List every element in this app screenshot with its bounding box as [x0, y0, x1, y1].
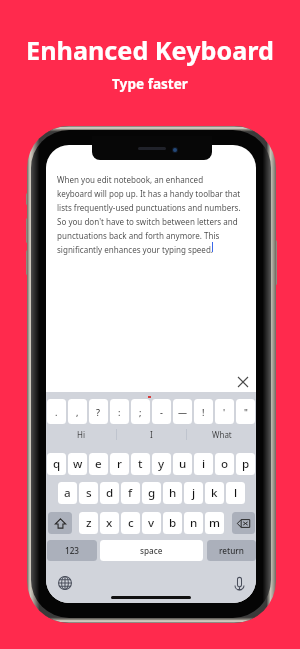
staticText: h — [169, 485, 177, 501]
staticText: ! — [202, 406, 205, 418]
staticText: e — [95, 456, 102, 472]
staticText: . — [55, 406, 58, 418]
staticText: Enhanced Keyboard — [26, 33, 274, 67]
button[interactable]: f — [121, 482, 140, 504]
staticText: q — [53, 456, 61, 472]
staticText: b — [169, 515, 177, 531]
staticText: ; — [139, 406, 142, 418]
button[interactable]: r — [110, 453, 129, 475]
staticText: " — [244, 406, 248, 418]
button[interactable]: Shift — [48, 512, 72, 534]
button[interactable]: space — [100, 540, 203, 561]
button[interactable]: d — [100, 482, 119, 504]
button[interactable]: b — [163, 512, 182, 534]
button[interactable]: o — [215, 453, 234, 475]
staticText: d — [106, 485, 114, 501]
button[interactable]: j — [184, 482, 203, 504]
staticText: l — [234, 485, 238, 501]
staticText: ? — [96, 406, 101, 418]
staticText: v — [148, 515, 155, 531]
button[interactable]: I — [117, 424, 186, 444]
button[interactable]: Change keyboard language — [55, 573, 75, 593]
button[interactable]: What — [187, 424, 256, 444]
staticText: w — [73, 456, 83, 472]
staticText: r — [117, 456, 122, 472]
staticText: k — [211, 485, 218, 501]
staticText: — — [178, 406, 188, 418]
staticText: y — [158, 456, 165, 472]
button[interactable]: ; — [131, 399, 150, 424]
button[interactable]: , — [68, 399, 87, 424]
button[interactable]: ? — [89, 399, 108, 424]
staticText: a — [64, 485, 71, 501]
button[interactable]: t — [131, 453, 150, 475]
button[interactable]: v — [142, 512, 161, 534]
staticText: - — [160, 406, 163, 418]
button[interactable]: return — [207, 540, 256, 561]
button[interactable]: g — [142, 482, 161, 504]
staticText: z — [86, 515, 92, 531]
button[interactable]: h — [163, 482, 182, 504]
staticText: m — [209, 515, 220, 531]
button[interactable]: e — [89, 453, 108, 475]
staticText: t — [138, 456, 143, 472]
button[interactable]: Backspace — [232, 512, 255, 534]
button[interactable]: z — [79, 512, 98, 534]
button[interactable]: n — [184, 512, 203, 534]
staticText: Type faster — [112, 74, 188, 93]
button[interactable]: w — [68, 453, 87, 475]
staticText: 123 — [65, 545, 80, 556]
staticText: x — [106, 515, 113, 531]
button[interactable]: y — [152, 453, 171, 475]
staticText: p — [242, 456, 250, 472]
staticText: Hi — [77, 429, 85, 440]
staticText: When you edit notebook, an enhanced keyb… — [57, 174, 252, 255]
button[interactable]: c — [121, 512, 140, 534]
button[interactable]: a — [58, 482, 77, 504]
button[interactable]: ' — [215, 399, 234, 424]
staticText: n — [190, 515, 198, 531]
button[interactable]: q — [47, 453, 66, 475]
staticText: u — [179, 456, 187, 472]
button[interactable]: i — [194, 453, 213, 475]
staticText: j — [192, 485, 196, 501]
button[interactable]: s — [79, 482, 98, 504]
button[interactable]: - — [152, 399, 171, 424]
button[interactable]: Dictation — [229, 573, 249, 593]
staticText: I — [150, 429, 153, 440]
button[interactable]: Close keyboard — [234, 373, 252, 391]
staticText: s — [86, 485, 92, 501]
button[interactable]: x — [100, 512, 119, 534]
staticText: : — [118, 406, 121, 418]
button[interactable]: u — [173, 453, 192, 475]
staticText: c — [128, 515, 134, 531]
button[interactable]: ! — [194, 399, 213, 424]
button[interactable]: Hi — [46, 424, 116, 444]
button[interactable]: — — [173, 399, 192, 424]
staticText: f — [128, 485, 133, 501]
button[interactable]: . — [47, 399, 66, 424]
staticText: What — [212, 429, 232, 440]
staticText: , — [76, 406, 79, 418]
staticText: o — [221, 456, 229, 472]
button[interactable]: " — [236, 399, 255, 424]
staticText: i — [202, 456, 206, 472]
staticText: space — [140, 545, 163, 556]
button[interactable]: l — [226, 482, 245, 504]
button[interactable]: m — [205, 512, 224, 534]
button[interactable]: 123 — [47, 540, 97, 561]
button[interactable]: : — [110, 399, 129, 424]
staticText: g — [148, 485, 156, 501]
staticText: return — [219, 545, 244, 556]
button[interactable]: p — [236, 453, 255, 475]
button[interactable]: k — [205, 482, 224, 504]
staticText: ' — [223, 406, 226, 418]
